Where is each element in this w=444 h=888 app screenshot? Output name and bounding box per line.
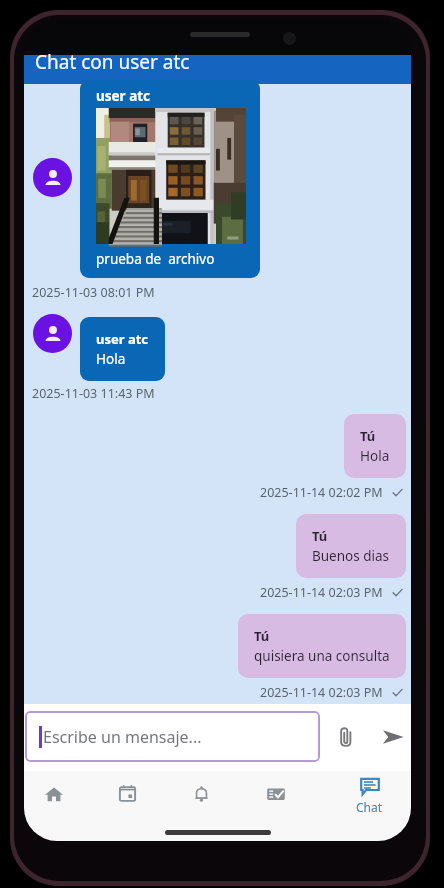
staticText: 2025-11-03 08:01 PM (32, 284, 155, 301)
staticText: 2025-11-14 02:03 PM (260, 684, 383, 701)
staticText: user atc (96, 87, 151, 105)
button[interactable]: Tú (296, 514, 406, 578)
staticText: Hola (360, 447, 390, 465)
button[interactable]: Enviar mensaje (373, 717, 411, 757)
button[interactable]: Escribe un mensaje... (25, 711, 320, 762)
staticText: 2025-11-03 11:43 PM (32, 385, 155, 402)
button[interactable]: user atc (80, 317, 165, 381)
button[interactable]: Adjuntar archivo (326, 717, 366, 757)
staticText: quisiera una consulta (254, 647, 390, 665)
button[interactable]: Notificaciones (164, 771, 238, 816)
button[interactable]: Tú (344, 414, 406, 478)
staticText: Escribe un mensaje... (43, 726, 202, 748)
staticText: Chat (356, 799, 383, 815)
button[interactable]: Tú (238, 614, 406, 678)
button[interactable]: Calendario (90, 771, 164, 816)
button[interactable]: Chat (314, 773, 411, 818)
button[interactable]: Tareas (239, 771, 313, 816)
staticText: prueba de archivo (96, 250, 215, 268)
staticText: Chat con user atc (35, 49, 190, 75)
staticText: user atc (96, 330, 149, 348)
staticText: Buenos dias (312, 547, 390, 565)
staticText: Hola (96, 350, 126, 368)
staticText: Tú (312, 527, 328, 545)
staticText: 2025-11-14 02:03 PM (260, 584, 383, 601)
staticText: 2025-11-14 02:02 PM (260, 484, 383, 501)
staticText: Tú (254, 627, 270, 645)
button[interactable]: user atc (80, 80, 260, 278)
button[interactable]: Inicio (24, 771, 91, 816)
staticText: Tú (360, 427, 376, 445)
